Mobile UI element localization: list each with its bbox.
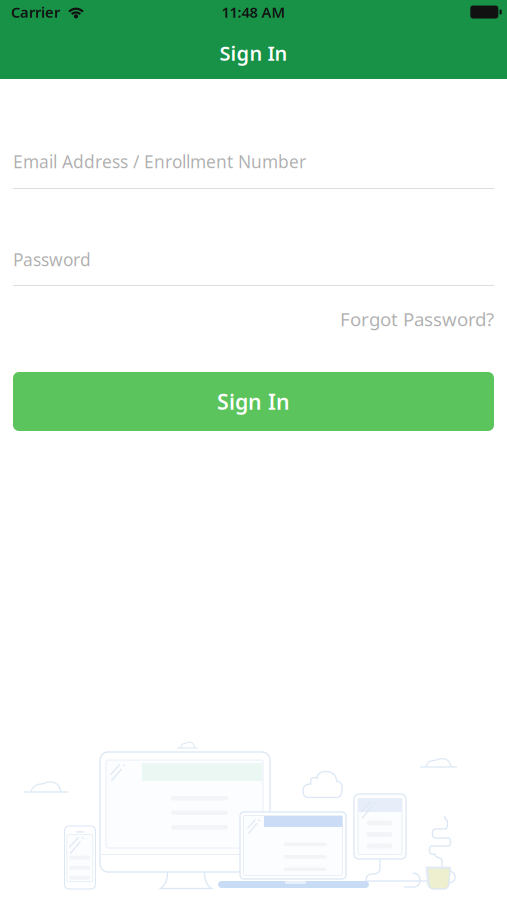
staticText: Password xyxy=(13,248,91,271)
staticText: Sign In xyxy=(217,387,290,416)
staticText: Sign In xyxy=(219,40,287,66)
button[interactable]: Forgot Password? xyxy=(13,306,494,332)
staticText: 11:48 AM xyxy=(221,2,285,22)
staticText: Carrier xyxy=(11,2,60,22)
button[interactable]: Sign In xyxy=(13,372,494,431)
staticText: Forgot Password? xyxy=(340,307,494,331)
staticText: Email Address / Enrollment Number xyxy=(13,150,306,173)
